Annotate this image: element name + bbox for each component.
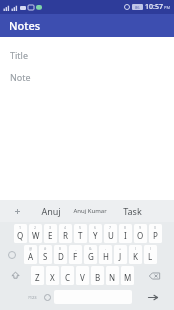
button[interactable]: )	[144, 245, 157, 264]
staticText: ?123	[28, 295, 37, 300]
button[interactable]: @	[24, 245, 37, 264]
staticText: V	[80, 272, 85, 283]
staticText: S	[43, 251, 48, 262]
staticText: Anuj Kumar	[73, 207, 107, 215]
button[interactable]: Backspace	[135, 265, 174, 286]
button[interactable]: &	[84, 245, 97, 264]
staticText: 2	[34, 225, 37, 230]
staticText: +	[119, 246, 122, 251]
button[interactable]: Z	[31, 266, 44, 285]
button[interactable]: (	[129, 245, 142, 264]
button[interactable]: 0	[149, 224, 162, 243]
staticText: 5	[79, 225, 82, 230]
button[interactable]: $	[54, 245, 67, 264]
staticText: U	[108, 230, 114, 241]
staticText: Y	[93, 230, 98, 241]
button[interactable]: 9	[134, 224, 147, 243]
staticText: $	[59, 246, 62, 251]
staticText: E	[48, 230, 53, 241]
staticText: F	[73, 251, 78, 262]
button[interactable]: 3	[44, 224, 57, 243]
staticText: Task	[123, 205, 142, 217]
button[interactable]: Add	[0, 200, 34, 222]
staticText: H	[103, 251, 109, 262]
button[interactable]: Enter	[132, 286, 174, 308]
staticText: J	[119, 251, 122, 262]
staticText: 9	[139, 225, 142, 230]
staticText: L	[148, 251, 153, 262]
staticText: 10:57	[145, 2, 163, 12]
button[interactable]: Note	[10, 71, 31, 83]
button[interactable]: Title	[10, 49, 28, 61]
button[interactable]: _	[69, 245, 82, 264]
button[interactable]: -	[99, 245, 112, 264]
staticText: N	[109, 272, 116, 283]
button[interactable]: B	[91, 266, 104, 285]
button[interactable]: Task	[112, 200, 152, 222]
staticText: 0	[154, 225, 157, 230]
button[interactable]: X	[46, 266, 59, 285]
button[interactable]: Anuj Kumar	[68, 200, 112, 222]
button[interactable]: V	[76, 266, 89, 285]
staticText: Z	[35, 272, 40, 283]
staticText: G	[88, 251, 94, 262]
button[interactable]: Anuj	[34, 200, 68, 222]
staticText: Anuj	[41, 205, 61, 217]
button[interactable]: M	[121, 266, 134, 285]
staticText: B	[95, 272, 101, 283]
staticText: )	[150, 246, 152, 251]
staticText: (	[135, 246, 137, 251]
staticText: _	[75, 246, 77, 251]
button[interactable]: 7	[104, 224, 117, 243]
staticText: C	[65, 272, 71, 283]
button[interactable]: 6	[89, 224, 102, 243]
staticText: D	[58, 251, 64, 262]
button[interactable]: N	[106, 266, 119, 285]
staticText: @	[29, 246, 33, 251]
staticText: PM	[164, 5, 171, 10]
staticText: -	[105, 246, 107, 251]
staticText: R	[63, 230, 68, 241]
staticText: Notes	[9, 18, 41, 33]
staticText: 4	[64, 225, 67, 230]
staticText: A	[28, 251, 34, 262]
staticText: 7	[109, 225, 112, 230]
staticText: 1	[19, 225, 22, 230]
staticText: T	[78, 230, 83, 241]
staticText: Q	[17, 230, 24, 241]
staticText: O	[137, 230, 144, 241]
button[interactable]: 5	[74, 224, 87, 243]
button[interactable]: 4	[59, 224, 72, 243]
staticText: #	[44, 246, 47, 251]
button[interactable]: Shift	[0, 265, 30, 286]
button[interactable]: C	[61, 266, 74, 285]
button[interactable]: Language	[0, 244, 23, 265]
staticText: 8	[124, 225, 127, 230]
button[interactable]: 2	[29, 224, 42, 243]
staticText: X	[50, 272, 55, 283]
button[interactable]: Emoji	[40, 286, 54, 308]
staticText: 86	[135, 5, 140, 10]
staticText: P	[153, 230, 158, 241]
staticText: &	[89, 246, 92, 251]
staticText: 3	[49, 225, 52, 230]
staticText: I	[124, 230, 127, 241]
button[interactable]: +	[114, 245, 127, 264]
staticText: M	[124, 272, 132, 283]
button[interactable]: 8	[119, 224, 132, 243]
staticText: K	[133, 251, 138, 262]
staticText: W	[32, 230, 40, 241]
button[interactable]: #	[39, 245, 52, 264]
button[interactable]: 1	[14, 224, 27, 243]
staticText: 6	[94, 225, 97, 230]
button[interactable]: Symbols	[24, 286, 40, 308]
